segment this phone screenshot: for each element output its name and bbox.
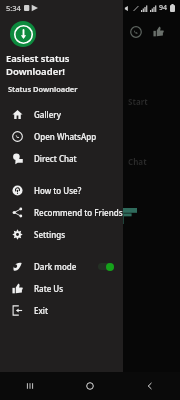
staticText: Settings <box>34 229 66 240</box>
other: App icon <box>10 21 36 47</box>
button[interactable]: Exit <box>0 299 123 321</box>
button[interactable]: Rate Us <box>151 24 166 39</box>
button[interactable]: Settings <box>0 223 123 245</box>
button[interactable]: Dark mode <box>0 255 123 277</box>
staticText: 5:34 <box>6 3 21 13</box>
button[interactable]: Open WhatsApp <box>0 125 123 147</box>
button[interactable]: Gallery <box>0 103 123 125</box>
staticText: How to Use? <box>34 185 82 196</box>
staticText: Easiest status Downloader! <box>6 52 129 78</box>
button[interactable]: Recent apps <box>0 372 60 400</box>
button[interactable]: Rate Us <box>0 277 123 299</box>
staticText: Start <box>128 96 148 107</box>
staticText: Exit <box>34 305 49 316</box>
staticText: Open WhatsApp <box>34 131 97 142</box>
staticText: Rate Us <box>34 283 64 294</box>
staticText: Dark mode <box>34 261 77 272</box>
staticText: Chat <box>128 156 147 167</box>
button[interactable]: How to Use? <box>0 179 123 201</box>
staticText: Direct Chat <box>34 153 77 164</box>
staticText: Gallery <box>34 109 61 120</box>
staticText: Status Downloader <box>8 84 78 94</box>
button[interactable]: Back <box>120 372 180 400</box>
staticText: 94 <box>159 3 168 13</box>
button[interactable]: Direct Chat <box>0 147 123 169</box>
button[interactable]: Open WhatsApp <box>128 24 143 39</box>
button[interactable]: Home <box>60 372 120 400</box>
staticText: Recommend to Friends <box>34 207 123 218</box>
button[interactable]: Recommend to Friends <box>0 201 123 223</box>
